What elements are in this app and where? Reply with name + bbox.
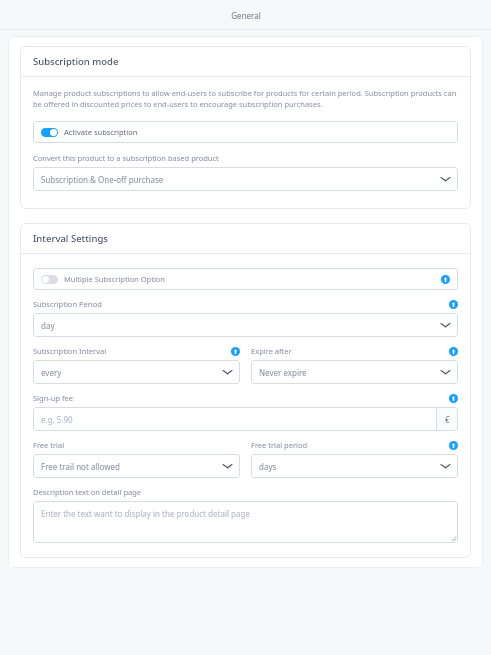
button[interactable]: General [8,0,483,30]
staticText: Free trial period [251,440,308,450]
button[interactable]: Toggle off [41,275,58,284]
button[interactable]: Help [449,394,458,403]
staticText: Free trail not allowed [41,461,120,472]
staticText: Enter the text want to display in the pr… [41,508,250,519]
staticText: Convert this product to a subscription b… [33,153,219,163]
button[interactable]: Enter the text want to display in the pr… [33,501,458,543]
staticText: e.g. 5.90 [41,414,73,425]
button[interactable]: day [33,313,458,337]
button[interactable]: Toggle off [33,268,458,290]
button[interactable]: Toggle on [41,128,58,137]
staticText: every [41,367,62,378]
staticText: Free trial [33,440,65,450]
button[interactable]: Subscription & One-off purchase [33,167,458,191]
button[interactable]: Help [449,441,458,450]
staticText: € [445,414,450,425]
staticText: Subscription & One-off purchase [41,174,164,185]
staticText: Sign-up fee [33,393,73,403]
staticText: day [41,320,55,331]
staticText: Subscription Interval [33,346,107,356]
button[interactable]: Free trail not allowed [33,454,240,478]
staticText: Activate subscription [64,127,138,137]
staticText: Never expire [259,367,307,378]
button[interactable]: days [251,454,458,478]
button[interactable]: Toggle on [33,121,458,143]
staticText: Description text on detail page [33,487,142,497]
button[interactable]: Help [449,300,458,309]
staticText: Subscription mode [33,55,119,68]
staticText: Subscription Period [33,299,102,309]
button[interactable]: Never expire [251,360,458,384]
button[interactable]: e.g. 5.90 [33,407,458,431]
button[interactable]: Help [231,347,240,356]
staticText: Expire after [251,346,292,356]
button[interactable]: every [33,360,240,384]
staticText: Interval Settings [33,232,108,245]
button[interactable]: Help [441,275,450,284]
staticText: days [259,461,277,472]
staticText: Multiple Subscription Option [64,274,165,284]
button[interactable]: Help [449,347,458,356]
staticText: Manage product subscriptions to allow en… [33,88,458,109]
staticText: General [231,10,261,21]
